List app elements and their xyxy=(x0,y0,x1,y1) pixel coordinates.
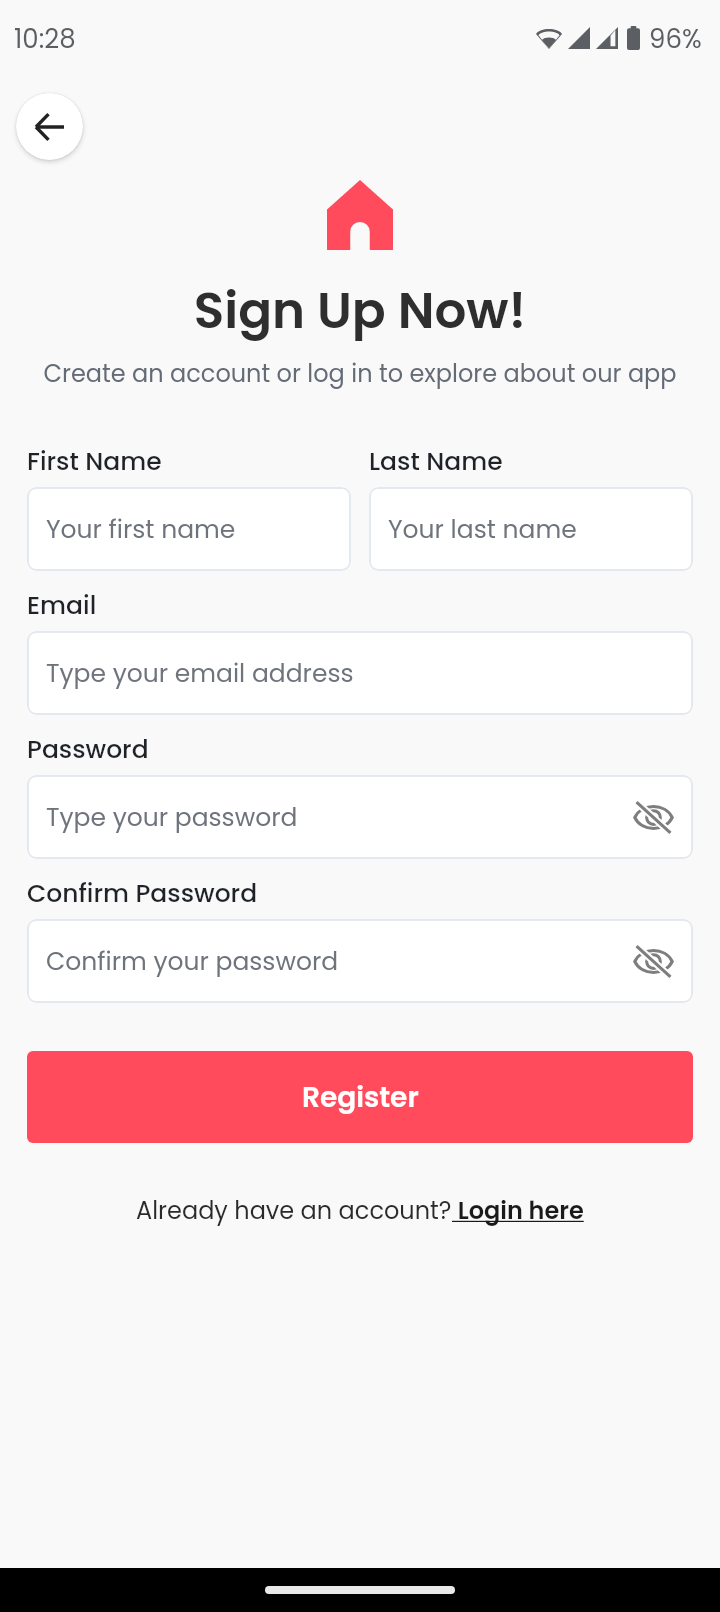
staticText: Your last name xyxy=(388,512,577,547)
staticText: Email xyxy=(27,588,97,623)
staticText: 10:28 xyxy=(14,21,76,57)
staticText: Confirm your password xyxy=(46,944,339,979)
button[interactable]: Type your password xyxy=(27,775,693,859)
staticText: Already have an account? xyxy=(136,1194,452,1228)
button[interactable]: Show password xyxy=(629,937,677,985)
button[interactable]: Show password xyxy=(629,793,677,841)
button[interactable]: Your first name xyxy=(27,487,351,571)
button[interactable]: Type your email address xyxy=(27,631,693,715)
staticText: Type your password xyxy=(46,800,298,835)
staticText: First Name xyxy=(27,444,162,479)
button[interactable]: Your last name xyxy=(369,487,693,571)
button[interactable]: Register xyxy=(27,1051,693,1143)
staticText: Login here xyxy=(452,1194,584,1228)
button[interactable]: Confirm your password xyxy=(27,919,693,1003)
button[interactable]: Login here xyxy=(452,1194,584,1228)
staticText: Create an account or log in to explore a… xyxy=(0,357,720,391)
staticText: Password xyxy=(27,732,149,767)
staticText: Your first name xyxy=(46,512,236,547)
staticText: 96% xyxy=(649,21,702,57)
staticText: Sign Up Now! xyxy=(0,276,720,346)
staticText: Type your email address xyxy=(46,656,354,691)
button[interactable]: Back xyxy=(16,93,83,160)
staticText: Last Name xyxy=(369,444,503,479)
staticText: Confirm Password xyxy=(27,876,258,911)
staticText: Register xyxy=(302,1078,419,1117)
